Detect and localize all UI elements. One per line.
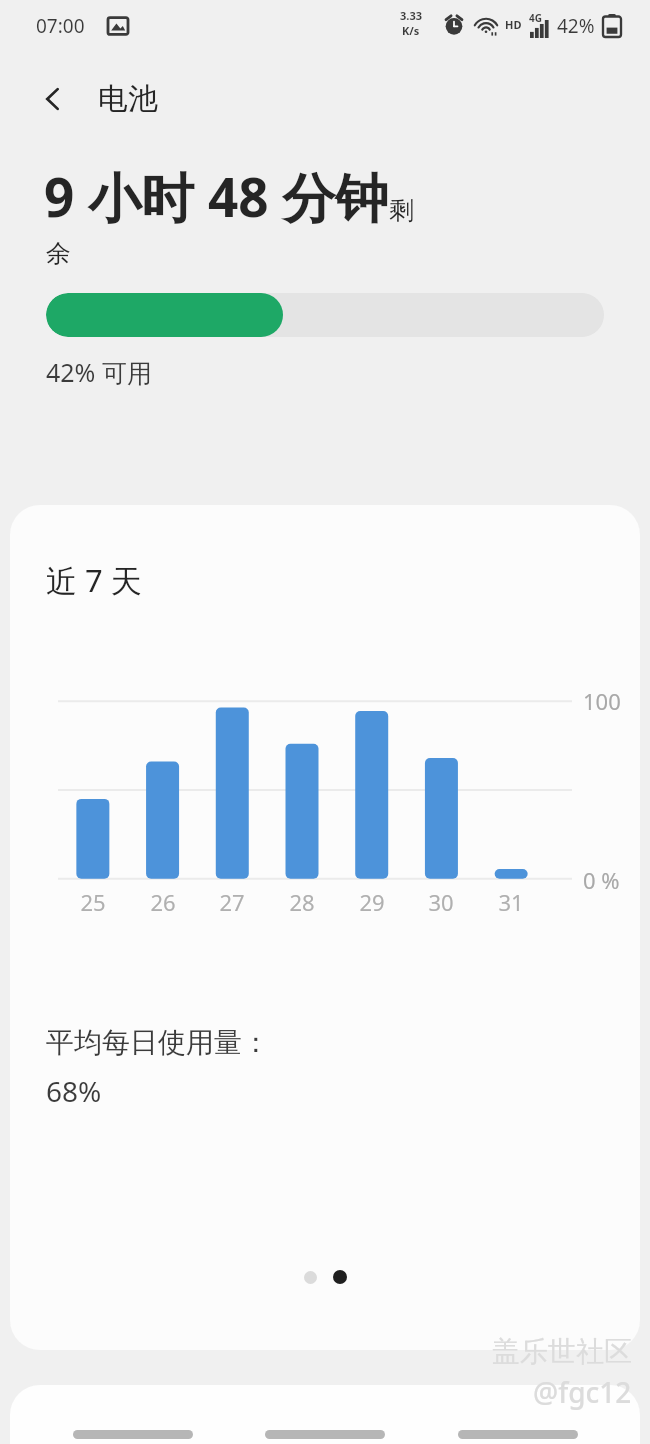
button[interactable]: Back (24, 70, 82, 128)
staticText: 26 (143, 887, 183, 917)
staticText: K/s (402, 23, 420, 38)
button[interactable]: Navigation (73, 1430, 193, 1439)
staticText: 近 7 天 (46, 559, 142, 601)
staticText: 31 (491, 887, 531, 917)
staticText: 0 % (583, 865, 620, 895)
staticText: 4G (529, 11, 542, 25)
staticText: 9 小时 48 分钟 (44, 160, 389, 232)
staticText: @fgc12 (533, 1373, 632, 1411)
button[interactable]: Navigation (458, 1430, 578, 1439)
staticText: 3.33 (400, 8, 422, 23)
button[interactable]: Navigation (265, 1430, 385, 1439)
staticText: 剩 (389, 195, 414, 226)
staticText: 28 (282, 887, 322, 917)
button[interactable]: 近 7 天 (10, 505, 640, 1350)
staticText: 电池 (98, 80, 158, 118)
staticText: 100 (583, 686, 621, 716)
staticText: 27 (212, 887, 252, 917)
staticText: 25 (73, 887, 113, 917)
staticText: 42% (557, 13, 595, 39)
staticText: 29 (352, 887, 392, 917)
staticText: 07:00 (36, 13, 85, 39)
staticText: 30 (421, 887, 461, 917)
staticText: HD (505, 17, 522, 32)
staticText: 盖乐世社区 (492, 1334, 632, 1369)
staticText: 68% (46, 1072, 102, 1110)
staticText: 平均每日使用量： (46, 1025, 270, 1060)
staticText: 42% 可用 (46, 355, 152, 389)
staticText: 余 (46, 238, 71, 269)
